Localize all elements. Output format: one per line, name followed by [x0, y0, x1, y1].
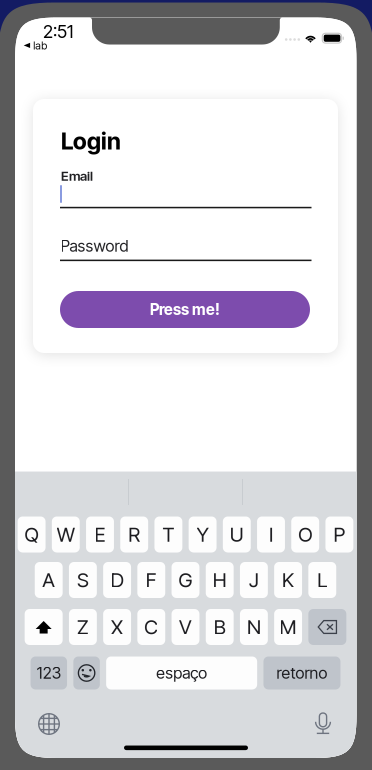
- button[interactable]: Back to lab: [24, 43, 30, 48]
- button[interactable]: M: [274, 609, 302, 645]
- staticText: Q: [25, 522, 39, 547]
- button[interactable]: Emoji: [73, 656, 100, 689]
- button[interactable]: J: [240, 562, 268, 598]
- staticText: I: [269, 522, 273, 547]
- button[interactable]: W: [52, 516, 80, 552]
- button[interactable]: Q: [18, 516, 46, 552]
- button[interactable]: P: [325, 516, 353, 552]
- button[interactable]: U: [223, 516, 251, 552]
- staticText: J: [249, 568, 259, 592]
- button[interactable]: Z: [69, 609, 97, 645]
- button[interactable]: espaço: [106, 656, 257, 689]
- button[interactable]: F: [137, 562, 165, 598]
- button[interactable]: Press me!: [60, 291, 310, 328]
- staticText: Password: [60, 236, 128, 256]
- staticText: 123: [37, 663, 61, 683]
- staticText: Press me!: [150, 300, 220, 319]
- button[interactable]: T: [154, 516, 182, 552]
- button[interactable]: K: [274, 562, 302, 598]
- staticText: lab: [33, 39, 47, 52]
- staticText: B: [214, 615, 226, 639]
- button[interactable]: Change keyboard language: [38, 713, 60, 735]
- staticText: V: [179, 615, 192, 639]
- button[interactable]: N: [240, 609, 268, 645]
- staticText: S: [77, 568, 89, 592]
- button[interactable]: Dictate: [312, 711, 334, 736]
- staticText: F: [146, 568, 157, 592]
- button[interactable]: R: [120, 516, 148, 552]
- button[interactable]: G: [171, 562, 199, 598]
- staticText: N: [247, 615, 261, 639]
- staticText: 2:51: [43, 21, 73, 42]
- staticText: Email: [61, 168, 93, 184]
- staticText: O: [298, 522, 312, 547]
- staticText: R: [128, 522, 140, 547]
- button[interactable]: D: [103, 562, 131, 598]
- button[interactable]: 123: [31, 656, 67, 689]
- staticText: P: [333, 522, 345, 547]
- button[interactable]: A: [35, 562, 63, 598]
- staticText: Login: [61, 127, 121, 155]
- button[interactable]: X: [103, 609, 131, 645]
- button[interactable]: Shift: [25, 609, 63, 645]
- staticText: G: [178, 568, 192, 592]
- button[interactable]: S: [69, 562, 97, 598]
- button[interactable]: L: [308, 562, 336, 598]
- button[interactable]: I: [257, 516, 285, 552]
- staticText: E: [94, 522, 105, 547]
- button[interactable]: E: [86, 516, 114, 552]
- staticText: W: [57, 522, 75, 547]
- staticText: A: [42, 568, 55, 592]
- staticText: L: [317, 568, 327, 592]
- staticText: M: [280, 615, 297, 639]
- button[interactable]: O: [291, 516, 319, 552]
- button[interactable]: Y: [189, 516, 216, 552]
- button[interactable]: Delete: [308, 609, 346, 645]
- staticText: Y: [197, 522, 209, 547]
- staticText: U: [230, 522, 244, 547]
- staticText: X: [111, 615, 123, 639]
- staticText: retorno: [276, 663, 327, 683]
- button[interactable]: retorno: [263, 656, 340, 689]
- staticText: D: [111, 568, 124, 592]
- staticText: C: [144, 615, 158, 639]
- staticText: T: [162, 522, 174, 547]
- button[interactable]: C: [137, 609, 165, 645]
- staticText: K: [282, 568, 294, 592]
- staticText: H: [213, 568, 227, 592]
- staticText: espaço: [156, 663, 207, 683]
- button[interactable]: B: [206, 609, 234, 645]
- button[interactable]: H: [206, 562, 234, 598]
- button[interactable]: V: [171, 609, 199, 645]
- staticText: Z: [77, 615, 89, 639]
